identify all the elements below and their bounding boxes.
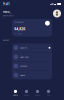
button[interactable]: Amazon [12,62,52,70]
button[interactable]: Stats [32,87,43,99]
staticText: You [47,94,50,96]
staticText: Cards [24,94,29,96]
button[interactable]: Uber Eats [12,53,52,61]
staticText: Apple [20,74,25,76]
staticText: Amazon [20,65,27,67]
staticText: $4,820 [14,27,25,31]
button[interactable]: Home [10,87,21,99]
staticText: •••• 4821 [14,32,22,35]
button[interactable]: Apple [12,71,52,79]
staticText: Stats [35,94,40,96]
button[interactable]: Total balance [12,19,52,36]
staticText: Recent [3,39,9,41]
staticText: Total balance [14,21,24,23]
staticText: Home [13,94,18,96]
staticText: welcome back [3,14,14,17]
button[interactable]: Cards [21,87,32,99]
staticText: Uber Eats [20,55,29,58]
button[interactable]: You [43,87,54,99]
staticText: 9:41 [3,2,10,6]
staticText: Hello, [3,10,11,14]
staticText: Spotify [20,46,27,49]
button[interactable]: Profile [53,9,61,17]
button[interactable]: Spotify [12,43,52,52]
